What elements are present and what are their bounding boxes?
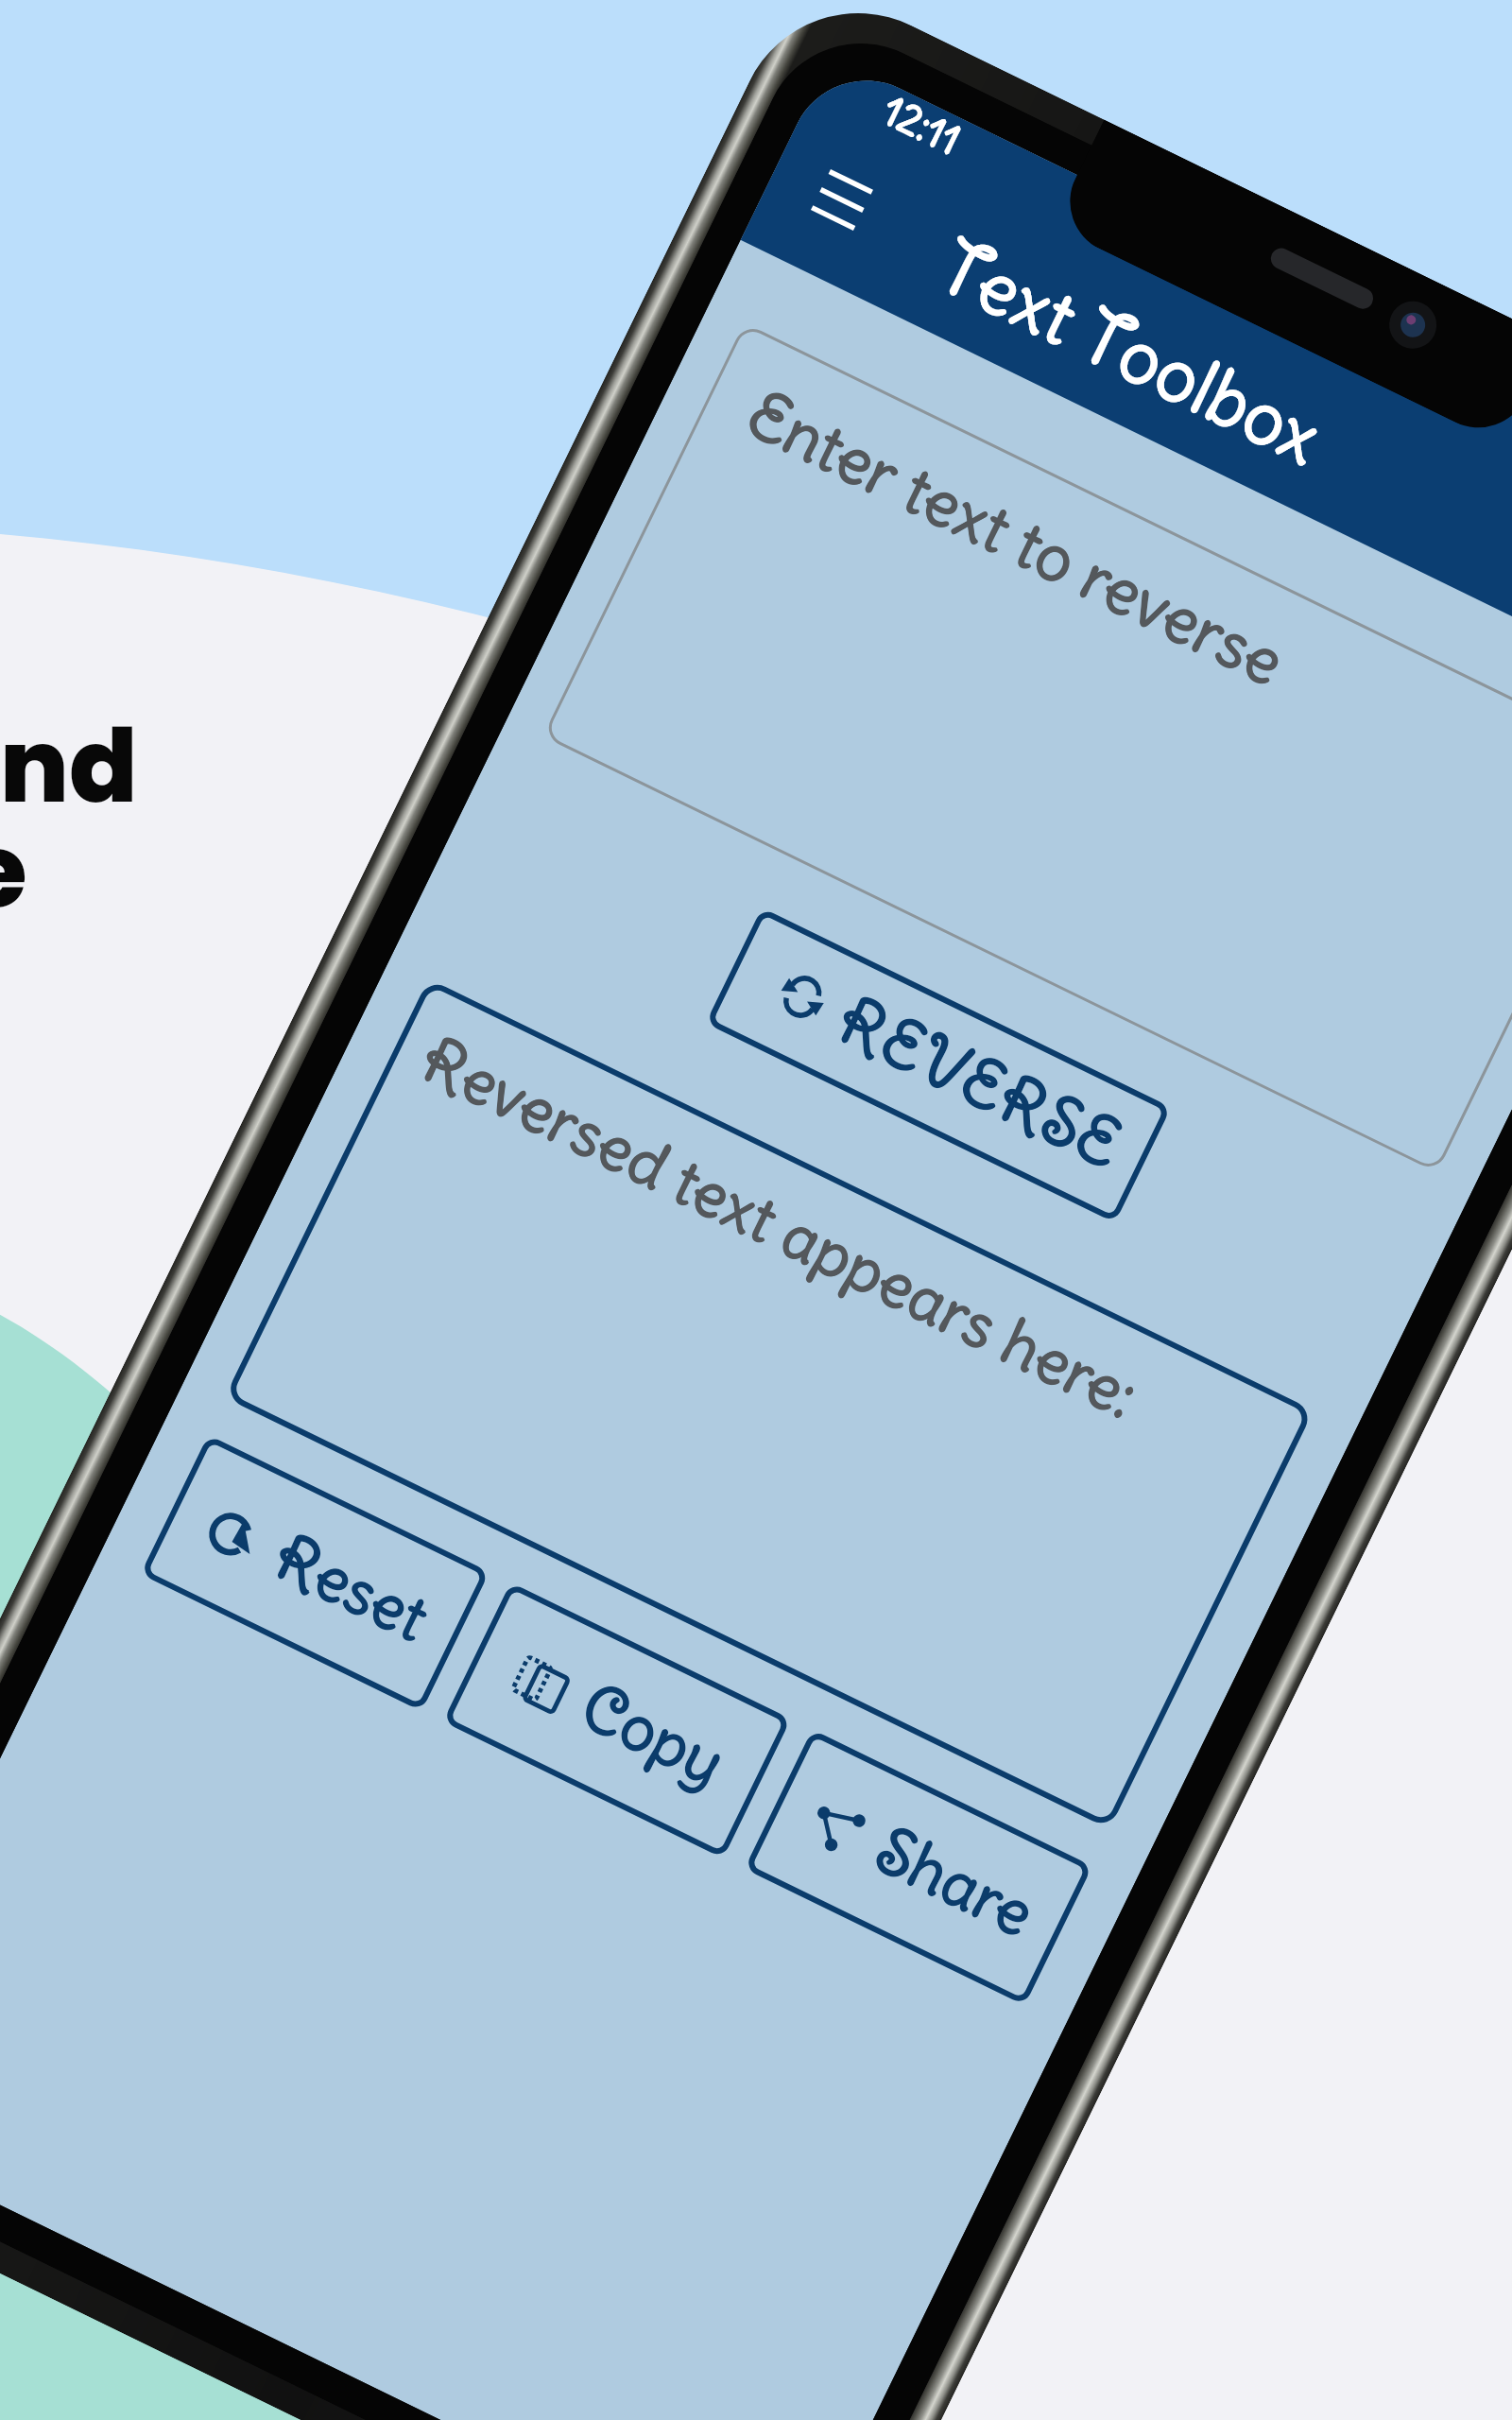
staticText: Reversed text appears here: — [408, 1019, 1151, 1435]
staticText: Copy — [568, 1666, 737, 1802]
staticText: Reversed text appears here: — [409, 1019, 1152, 1436]
staticText: Share — [864, 1810, 1047, 1953]
staticText: 12:11 — [875, 86, 968, 166]
staticText: Enter text to reverse — [734, 373, 1297, 702]
staticText: REVERSE — [825, 978, 1136, 1186]
staticText: Reversed text appears here: — [407, 1019, 1150, 1435]
staticText: Text Toolbox — [926, 221, 1338, 484]
staticText: Reset — [262, 1516, 442, 1657]
staticText: Share — [863, 1810, 1046, 1953]
staticText: Enter text to reverse — [735, 372, 1298, 702]
button[interactable]: Open navigation menu — [796, 154, 887, 245]
staticText: Enter text to reverse — [735, 373, 1298, 703]
staticText: Text Toolbox — [925, 221, 1336, 485]
staticText: Reset — [262, 1517, 442, 1658]
staticText: Enter text to reverse — [734, 374, 1297, 704]
staticText: Copy — [568, 1667, 737, 1803]
staticText: Reset — [261, 1516, 441, 1658]
staticText: Share — [864, 1809, 1047, 1952]
staticText: Reversed text appears here: — [408, 1020, 1151, 1436]
button[interactable]: Share — [744, 1729, 1093, 2005]
staticText: 12:11 — [876, 87, 969, 166]
button[interactable]: Copy — [443, 1582, 791, 1858]
staticText: Text Toolbox — [925, 220, 1337, 484]
staticText: REVERSE — [825, 977, 1136, 1185]
staticText: REVERSE — [824, 978, 1135, 1186]
staticText: Copy — [569, 1666, 738, 1802]
staticText: Reset — [261, 1517, 441, 1659]
staticText: 12:11 — [874, 86, 968, 166]
staticText: REVERSE — [823, 977, 1134, 1185]
staticText: Share — [863, 1811, 1046, 1954]
button[interactable]: Reset — [140, 1435, 490, 1711]
staticText: Text Toolbox — [924, 220, 1336, 483]
staticText: Share — [864, 1811, 1048, 1954]
staticText: Copy — [570, 1667, 738, 1803]
staticText: Enter text to reverse — [736, 373, 1298, 703]
staticText: REVERSE — [824, 978, 1135, 1187]
staticText: Copy — [569, 1666, 737, 1802]
staticText: share — [0, 801, 27, 942]
staticText: Text Toolbox — [926, 219, 1337, 483]
staticText: 12:11 — [874, 86, 968, 167]
staticText: Reset — [261, 1516, 440, 1657]
staticText: 12:11 — [875, 86, 968, 165]
button[interactable]: Enter text to reverse — [543, 323, 1512, 1173]
button[interactable]: REVERSE — [706, 908, 1171, 1223]
staticText: Reverse and — [0, 696, 138, 838]
staticText: Reversed text appears here: — [409, 1018, 1151, 1434]
